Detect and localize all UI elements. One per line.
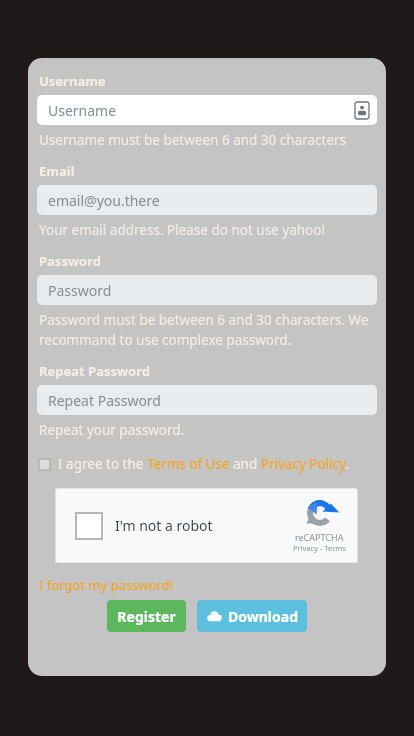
staticText: Repeat Password	[39, 362, 151, 380]
button[interactable]: Choose identity	[355, 102, 369, 119]
button[interactable]: I forgot my password!	[37, 575, 173, 595]
button[interactable]: email@you.there	[37, 185, 377, 215]
staticText: Password	[39, 252, 101, 270]
staticText: Username	[39, 72, 106, 90]
staticText: reCAPTCHA	[295, 531, 344, 543]
staticText: Download	[228, 607, 298, 626]
staticText: I forgot my password!	[39, 576, 173, 594]
button[interactable]: Register	[107, 600, 186, 632]
staticText: Password must be between 6 and 30 charac…	[39, 311, 373, 349]
staticText: Your email address. Please do not use ya…	[39, 221, 326, 239]
staticText: I'm not a robot	[115, 516, 213, 535]
staticText: Username must be between 6 and 30 charac…	[39, 131, 347, 149]
button[interactable]: Username	[37, 95, 377, 125]
staticText: I agree to the Terms of Use and Privacy …	[58, 455, 350, 473]
button[interactable]: Repeat Password	[37, 385, 377, 415]
staticText: email@you.there	[48, 191, 160, 210]
button[interactable]: Password	[37, 275, 377, 305]
button[interactable]: I'm not a robot	[55, 488, 358, 563]
button[interactable]: I agree to the Terms of Use and Privacy …	[37, 453, 377, 475]
staticText: Username	[48, 101, 117, 120]
staticText: Register	[117, 607, 176, 626]
staticText: Repeat your password.	[39, 421, 185, 439]
staticText: Email	[39, 162, 75, 180]
button[interactable]: Download	[197, 600, 307, 632]
staticText: Repeat Password	[48, 391, 161, 410]
staticText: Password	[48, 281, 112, 300]
staticText: Privacy - Terms	[293, 543, 346, 553]
